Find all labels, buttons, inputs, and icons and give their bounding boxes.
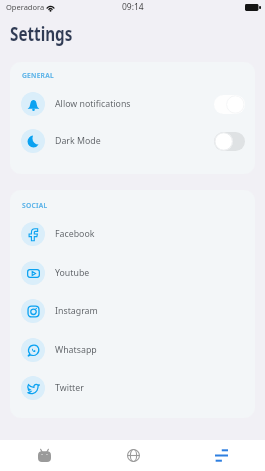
button[interactable]: Youtube [10, 261, 255, 285]
button[interactable]: Allow notifications [10, 92, 255, 116]
button[interactable]: Settings [177, 440, 265, 471]
button[interactable]: Apps [0, 440, 89, 471]
button[interactable]: Instagram [10, 299, 255, 323]
staticText: Whatsapp [55, 344, 97, 356]
button[interactable]: Facebook [10, 222, 255, 246]
staticText: 09:14 [122, 1, 144, 13]
staticText: Youtube [55, 267, 90, 279]
staticText: Twitter [55, 382, 84, 394]
button[interactable]: Switch off [214, 132, 245, 151]
button[interactable]: Browse [89, 440, 177, 471]
button[interactable]: Dark Mode [10, 129, 255, 153]
staticText: Settings [10, 20, 72, 47]
staticText: Dark Mode [55, 135, 101, 147]
staticText: Facebook [55, 228, 95, 240]
staticText: Instagram [55, 305, 98, 317]
button[interactable]: Switch on [214, 95, 245, 114]
button[interactable]: Whatsapp [10, 338, 255, 362]
staticText: Allow notifications [55, 98, 131, 110]
staticText: Operadora [6, 2, 45, 12]
staticText: GENERAL [22, 71, 54, 80]
staticText: SOCIAL [22, 201, 48, 210]
button[interactable]: Twitter [10, 376, 255, 400]
